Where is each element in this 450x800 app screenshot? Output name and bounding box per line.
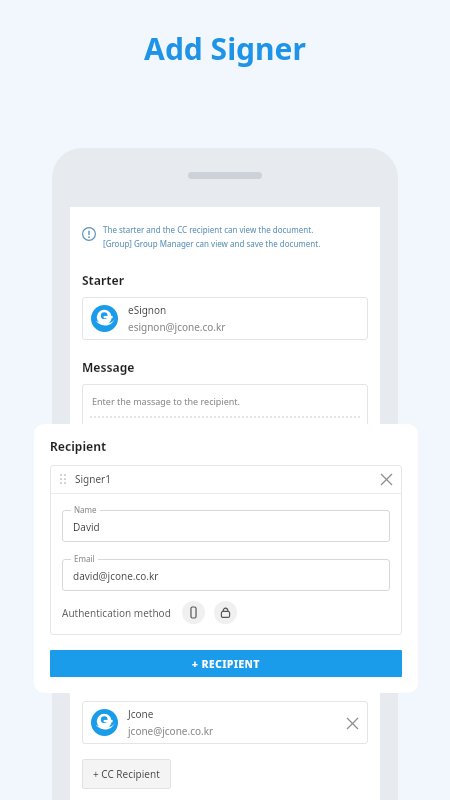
staticText: David bbox=[73, 520, 100, 534]
staticText: david@jcone.co.kr bbox=[73, 569, 159, 583]
button[interactable]: eSignon bbox=[82, 297, 368, 340]
staticText: Signer1 bbox=[75, 472, 111, 486]
button[interactable]: Jcone bbox=[82, 701, 368, 744]
staticText: eSignon bbox=[128, 303, 167, 317]
staticText: Jcone bbox=[128, 707, 154, 721]
button[interactable]: Remove Jcone bbox=[342, 713, 362, 733]
button[interactable]: Signer1 bbox=[50, 465, 402, 493]
button[interactable]: Password authentication bbox=[214, 601, 237, 624]
staticText: Enter the massage to the recipient. bbox=[92, 395, 240, 407]
staticText: Name bbox=[74, 504, 97, 515]
staticText: Message bbox=[82, 359, 135, 375]
button[interactable]: + RECIPIENT bbox=[50, 650, 402, 677]
staticText: Email bbox=[74, 553, 95, 564]
staticText: esignon@jcone.co.kr bbox=[128, 320, 226, 334]
staticText: Add Signer bbox=[0, 28, 450, 69]
staticText: Recipient bbox=[50, 438, 107, 454]
staticText: [Group] Group Manager can view and save … bbox=[103, 238, 321, 249]
button[interactable]: Enter the massage to the recipient. bbox=[82, 384, 368, 429]
staticText: Authentication method bbox=[62, 606, 171, 620]
staticText: + CC Recipient bbox=[93, 767, 160, 781]
staticText: Starter bbox=[82, 272, 125, 288]
button[interactable]: Mobile authentication bbox=[182, 601, 205, 624]
staticText: CC Recipient bbox=[82, 676, 157, 692]
button[interactable]: + CC Recipient bbox=[82, 759, 171, 789]
staticText: The starter and the CC recipient can vie… bbox=[103, 224, 314, 235]
staticText: + RECIPIENT bbox=[192, 657, 261, 671]
button[interactable]: Remove Signer1 bbox=[376, 469, 396, 489]
staticText: jcone@jcone.co.kr bbox=[128, 724, 214, 738]
